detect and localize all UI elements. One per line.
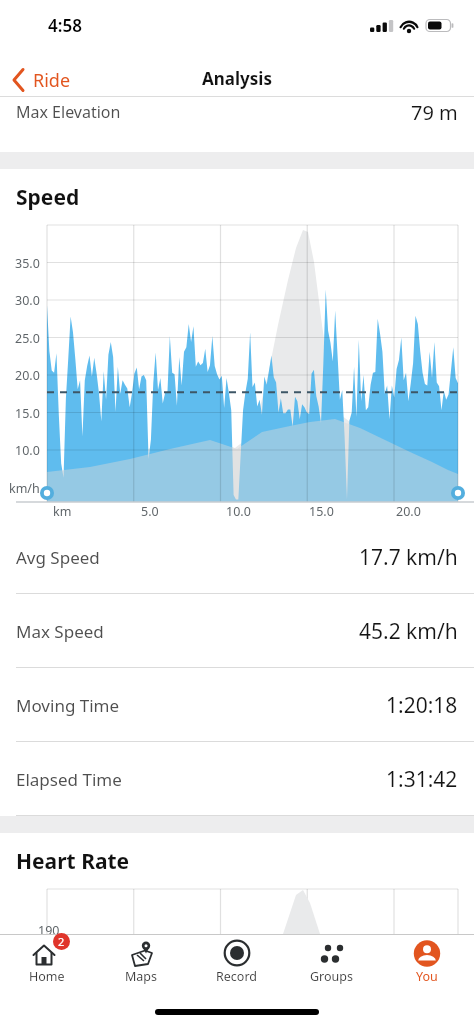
staticText: Max Speed (16, 620, 104, 643)
staticText: Ride (33, 68, 71, 93)
button[interactable]: Ride (10, 67, 71, 93)
button[interactable]: 2 (0, 939, 94, 985)
staticText: 190 (38, 922, 60, 934)
staticText: Elapsed Time (16, 768, 122, 791)
staticText: km (53, 503, 72, 519)
button[interactable]: Moving Time (0, 668, 474, 742)
button[interactable]: You (379, 939, 474, 985)
staticText: Moving Time (16, 694, 120, 717)
staticText: 1:20:18 (386, 691, 458, 720)
staticText: Maps (125, 968, 158, 985)
staticText: 10.0 (15, 442, 40, 458)
staticText: 4:58 (48, 14, 82, 37)
staticText: 15.0 (15, 405, 40, 421)
button[interactable]: Groups (284, 939, 379, 985)
staticText: 20.0 (396, 503, 421, 519)
staticText: 10.0 (226, 503, 251, 519)
button[interactable]: Record (189, 939, 284, 985)
staticText: 79 m (411, 99, 458, 126)
staticText: Speed (16, 183, 80, 212)
staticText: Groups (310, 968, 353, 985)
button[interactable]: Max Speed (0, 594, 474, 668)
staticText: Home (29, 968, 65, 985)
staticText: Max Elevation (16, 101, 121, 123)
staticText: 35.0 (15, 255, 40, 271)
staticText: 15.0 (309, 503, 334, 519)
staticText: 17.7 km/h (359, 543, 458, 572)
staticText: 20.0 (15, 367, 40, 383)
staticText: km/h (9, 480, 40, 496)
staticText: 1:31:42 (386, 765, 458, 794)
staticText: Heart Rate (16, 847, 130, 876)
staticText: 45.2 km/h (359, 617, 458, 646)
staticText: You (416, 968, 438, 985)
button[interactable]: Elapsed Time (0, 742, 474, 816)
staticText: 5.0 (141, 503, 159, 519)
button[interactable]: Max Elevation (16, 97, 458, 127)
staticText: Analysis (202, 67, 272, 90)
staticText: Avg Speed (16, 546, 100, 569)
staticText: 2 (58, 934, 65, 949)
button[interactable]: Maps (94, 939, 189, 985)
staticText: 30.0 (15, 292, 40, 308)
staticText: Record (216, 968, 257, 985)
staticText: 25.0 (15, 330, 40, 346)
button[interactable]: Avg Speed (0, 520, 474, 594)
